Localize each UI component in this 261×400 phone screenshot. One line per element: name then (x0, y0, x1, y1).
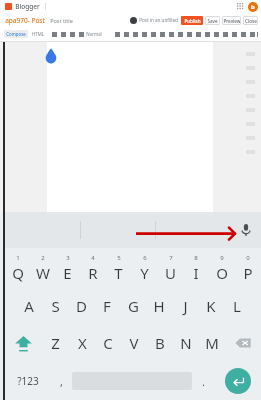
button[interactable]: 1 (5, 248, 30, 288)
button[interactable]: ?123 (5, 362, 50, 400)
button[interactable]: B (147, 324, 173, 362)
button[interactable]: . (192, 362, 214, 400)
button[interactable]: 3 (55, 248, 80, 288)
button[interactable]: 9 (209, 248, 235, 288)
button[interactable] (47, 42, 213, 212)
staticText: b (251, 3, 255, 11)
button[interactable]: HTML (32, 30, 44, 38)
button[interactable]: Link (167, 30, 176, 39)
button[interactable]: Bulleted list (221, 30, 230, 39)
button[interactable]: Preview (222, 16, 241, 25)
button[interactable]: K (198, 288, 224, 324)
button[interactable]: M (199, 324, 225, 362)
staticText: . (202, 374, 205, 389)
button[interactable]: Undo (50, 30, 59, 39)
button[interactable]: Underline (131, 30, 140, 39)
button[interactable]: D (68, 288, 94, 324)
button[interactable]: Google apps (237, 3, 244, 10)
staticText: apa970- Post (5, 16, 45, 25)
button[interactable]: V (121, 324, 147, 362)
button[interactable]: Z (42, 324, 69, 362)
staticText: D (76, 296, 87, 316)
button[interactable]: Alignment (212, 30, 221, 39)
button[interactable]: Shift (5, 324, 42, 362)
staticText: G (128, 296, 139, 316)
staticText: 5 (117, 254, 121, 262)
staticText: Save (207, 18, 218, 24)
button[interactable]: Publish (181, 16, 203, 25)
button[interactable]: Insert image (176, 30, 185, 39)
button[interactable]: G (120, 288, 146, 324)
button[interactable]: H (146, 288, 172, 324)
button[interactable]: S (42, 288, 68, 324)
button[interactable]: Font (68, 30, 77, 39)
staticText: Post title (50, 17, 73, 24)
staticText: O (216, 263, 228, 283)
staticText: Q (12, 263, 24, 283)
staticText: J (183, 296, 188, 316)
button[interactable]: Insert video (185, 30, 194, 39)
staticText: I (193, 263, 199, 283)
button[interactable]: C (95, 324, 121, 362)
button[interactable]: Bold (113, 30, 122, 39)
button[interactable]: 5 (105, 248, 131, 288)
button[interactable]: Close (243, 16, 258, 25)
button[interactable]: 6 (131, 248, 157, 288)
button[interactable]: Compose (6, 30, 26, 38)
button[interactable]: F (94, 288, 120, 324)
button[interactable]: Special character (194, 30, 203, 39)
button[interactable]: Italic (122, 30, 131, 39)
button[interactable]: Save (205, 16, 220, 25)
button[interactable]: Blogger home (5, 3, 12, 10)
staticText: , (60, 374, 63, 389)
button[interactable]: Enter (225, 368, 251, 394)
staticText: N (180, 333, 192, 353)
button[interactable]: 4 (80, 248, 105, 288)
button[interactable]: 7 (157, 248, 183, 288)
button[interactable]: Text color (149, 30, 158, 39)
staticText: ?123 (17, 374, 39, 388)
button[interactable]: Voice input (231, 212, 261, 248)
button[interactable]: L (224, 288, 250, 324)
button[interactable]: A (16, 288, 42, 324)
button[interactable]: Quote (239, 30, 248, 39)
button[interactable]: Redo (59, 30, 68, 39)
button[interactable]: Font size (77, 30, 86, 39)
button[interactable]: 0 (235, 248, 261, 288)
button[interactable]: Jump break (203, 30, 212, 39)
button[interactable]: 8 (183, 248, 209, 288)
button[interactable] (81, 212, 156, 248)
button[interactable]: Strikethrough (140, 30, 149, 39)
button[interactable]: Spell check (257, 30, 258, 39)
staticText: 0 (246, 254, 250, 262)
staticText: K (206, 296, 216, 316)
button[interactable]: Backspace (225, 324, 261, 362)
button[interactable]: 2 (30, 248, 55, 288)
button[interactable]: Highlight (158, 30, 167, 39)
button[interactable] (156, 212, 231, 248)
button[interactable]: N (173, 324, 199, 362)
button[interactable]: X (69, 324, 95, 362)
button[interactable]: Remove formatting (248, 30, 257, 39)
button[interactable]: J (172, 288, 198, 324)
button[interactable]: Numbered list (230, 30, 239, 39)
button[interactable]: Account (248, 2, 258, 12)
button[interactable]: , (50, 362, 72, 400)
button[interactable]: Author (130, 17, 137, 24)
staticText: 2 (41, 254, 45, 262)
button[interactable]: Normal (86, 30, 106, 38)
staticText: U (165, 263, 176, 283)
staticText: Normal (86, 31, 102, 37)
staticText: H (153, 296, 165, 316)
staticText: X (78, 333, 87, 353)
